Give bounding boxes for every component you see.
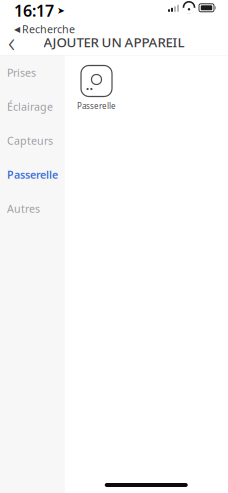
staticText: ◀ bbox=[14, 25, 20, 34]
staticText: Recherche bbox=[22, 22, 75, 36]
staticText: ‹ bbox=[8, 24, 15, 60]
button[interactable]: Prises bbox=[0, 55, 64, 89]
staticText: Passerelle bbox=[7, 167, 58, 182]
button[interactable]: Passerelle bbox=[0, 157, 64, 191]
staticText: Prises bbox=[7, 65, 36, 80]
staticText: 16:17 bbox=[14, 0, 54, 21]
staticText: ➤ bbox=[57, 5, 65, 16]
button[interactable]: Passerelle bbox=[74, 65, 118, 111]
staticText: Autres bbox=[7, 201, 40, 216]
button[interactable]: Capteurs bbox=[0, 123, 64, 157]
button[interactable]: Back bbox=[0, 31, 38, 53]
staticText: Éclairage bbox=[7, 99, 53, 114]
staticText: Passerelle bbox=[77, 100, 116, 111]
button[interactable]: Éclairage bbox=[0, 89, 64, 123]
button[interactable]: Autres bbox=[0, 191, 64, 225]
staticText: AJOUTER UN APPAREIL bbox=[43, 33, 184, 51]
staticText: Capteurs bbox=[7, 133, 53, 148]
